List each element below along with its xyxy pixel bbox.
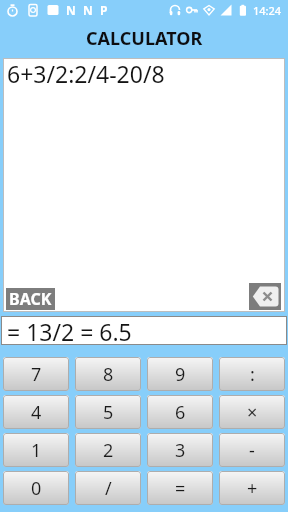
button[interactable]: /	[75, 471, 141, 505]
button[interactable]: ×	[219, 395, 285, 429]
staticText: :	[250, 362, 255, 387]
button[interactable]: 5	[75, 395, 141, 429]
button[interactable]: 1	[3, 433, 69, 467]
button[interactable]: -	[219, 433, 285, 467]
staticText: -	[249, 438, 255, 463]
staticText: 0	[31, 476, 42, 501]
staticText: = 13/2 = 6.5	[7, 316, 132, 345]
button[interactable]: 8	[75, 357, 141, 391]
staticText: N	[83, 2, 93, 18]
staticText: 9	[175, 362, 186, 387]
staticText: =	[175, 476, 186, 501]
button[interactable]: 6	[147, 395, 213, 429]
button[interactable]: 9	[147, 357, 213, 391]
button[interactable]: 4	[3, 395, 69, 429]
staticText: N	[66, 2, 76, 18]
staticText: 4	[31, 400, 42, 425]
staticText: 3	[175, 438, 186, 463]
staticText: BACK	[9, 288, 52, 310]
button[interactable]: BACK	[6, 288, 55, 310]
staticText: P	[100, 2, 108, 18]
staticText: 2	[103, 438, 114, 463]
staticText: 14:24	[253, 3, 282, 18]
staticText: 5	[103, 400, 114, 425]
staticText: +	[247, 476, 258, 501]
button[interactable]: 3	[147, 433, 213, 467]
staticText: 8	[103, 362, 114, 387]
button[interactable]: 2	[75, 433, 141, 467]
button[interactable]	[249, 283, 281, 310]
button[interactable]: 0	[3, 471, 69, 505]
staticText: CALCULATOR	[86, 26, 203, 51]
button[interactable]: +	[219, 471, 285, 505]
staticText: ×	[247, 400, 258, 425]
staticText: 7	[31, 362, 42, 387]
staticText: /	[105, 476, 112, 501]
staticText: 6+3/2:2/4-20/8	[7, 58, 165, 89]
staticText: 1	[31, 438, 42, 463]
button[interactable]: =	[147, 471, 213, 505]
button[interactable]: 7	[3, 357, 69, 391]
staticText: 6	[175, 400, 186, 425]
button[interactable]: :	[219, 357, 285, 391]
